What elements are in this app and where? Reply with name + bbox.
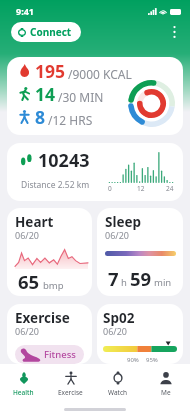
staticText: 06/20 [103, 325, 127, 337]
staticText: /30 MIN [58, 89, 104, 105]
staticText: 65 [18, 269, 40, 291]
button[interactable]: Connect [11, 22, 81, 42]
staticText: Exercise [15, 309, 70, 327]
button[interactable]: Sp02 [97, 304, 183, 364]
staticText: 10243 [38, 148, 90, 173]
staticText: 95% [146, 356, 158, 364]
button[interactable]: More options [165, 23, 183, 41]
button[interactable]: Watch [94, 370, 142, 398]
button[interactable]: Health [0, 370, 47, 398]
staticText: 14 [35, 82, 56, 105]
staticText: /12 HRS [48, 112, 93, 128]
button[interactable]: Me [142, 370, 190, 398]
staticText: Distance 2.52 km [21, 179, 90, 191]
staticText: /9000 KCAL [68, 66, 132, 82]
staticText: 12 [137, 184, 145, 193]
staticText: 24 [166, 184, 174, 193]
staticText: Fitness [44, 348, 76, 361]
staticText: Health [13, 388, 34, 397]
staticText: 59 [130, 266, 152, 291]
staticText: Sleep [105, 213, 142, 231]
staticText: Watch [108, 388, 128, 397]
staticText: 06/20 [15, 325, 39, 337]
staticText: Heart [15, 213, 54, 231]
staticText: 90% [127, 356, 139, 364]
staticText: 9:41 [16, 5, 34, 17]
staticText: Connect [30, 25, 72, 39]
staticText: Sp02 [103, 309, 135, 327]
staticText: Me [161, 388, 171, 397]
button[interactable]: Heart [7, 208, 92, 296]
button[interactable]: Sleep [97, 208, 183, 296]
button[interactable]: 195 [7, 57, 183, 135]
staticText: 0 [108, 184, 112, 193]
button[interactable]: 10243 [7, 143, 183, 201]
staticText: 8 [35, 105, 46, 128]
staticText: h [121, 276, 127, 289]
staticText: 195 [35, 59, 66, 82]
staticText: 06/20 [15, 229, 39, 241]
button[interactable]: Exercise [7, 304, 92, 364]
staticText: Exercise [58, 388, 83, 397]
button[interactable]: Exercise [47, 370, 94, 398]
staticText: 7 [108, 266, 119, 291]
staticText: 06/20 [105, 229, 129, 241]
staticText: bmp [43, 279, 64, 292]
staticText: min [154, 276, 172, 289]
